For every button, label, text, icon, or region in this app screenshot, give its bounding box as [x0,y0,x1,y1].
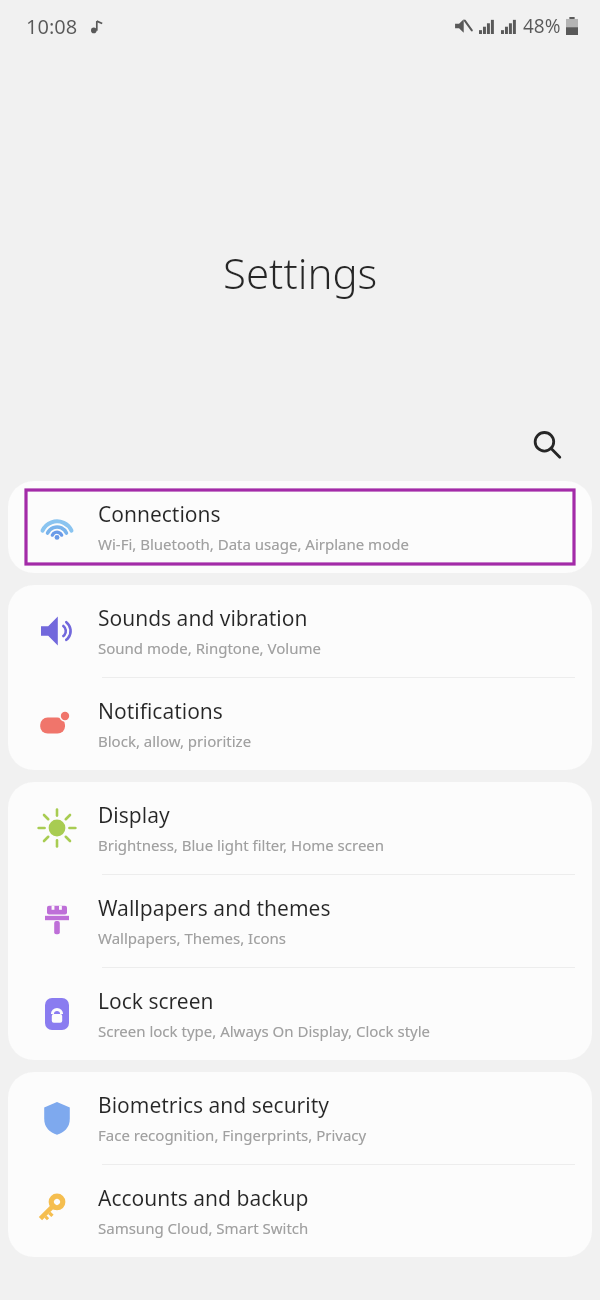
button[interactable]: Accounts and backup [8,1165,592,1257]
staticText: Block, allow, prioritize [98,731,252,751]
staticText: Accounts and backup [98,1184,309,1213]
staticText: 48% [523,13,561,39]
button[interactable]: Notifications [8,678,592,770]
staticText: Brightness, Blue light filter, Home scre… [98,835,385,855]
button[interactable]: Lock screen [8,968,592,1060]
staticText: Wallpapers and themes [98,894,331,923]
staticText: Settings [223,244,378,301]
button[interactable]: Sounds and vibration [8,585,592,677]
staticText: Biometrics and security [98,1091,329,1120]
button[interactable]: Search [523,421,571,469]
staticText: Lock screen [98,987,214,1016]
button[interactable]: Biometrics and security [8,1072,592,1164]
staticText: Screen lock type, Always On Display, Clo… [98,1021,431,1041]
staticText: Sound mode, Ringtone, Volume [98,638,321,658]
button[interactable]: Wallpapers and themes [8,875,592,967]
button[interactable]: Connections [8,481,592,573]
staticText: Connections [98,500,221,529]
staticText: Display [98,801,170,830]
staticText: Notifications [98,697,223,726]
staticText: Face recognition, Fingerprints, Privacy [98,1125,367,1145]
staticText: Samsung Cloud, Smart Switch [98,1218,309,1238]
staticText: Wi-Fi, Bluetooth, Data usage, Airplane m… [98,534,409,554]
staticText: Wallpapers, Themes, Icons [98,928,286,948]
staticText: 10:08 [26,13,78,40]
staticText: Sounds and vibration [98,604,308,633]
button[interactable]: Display [8,782,592,874]
